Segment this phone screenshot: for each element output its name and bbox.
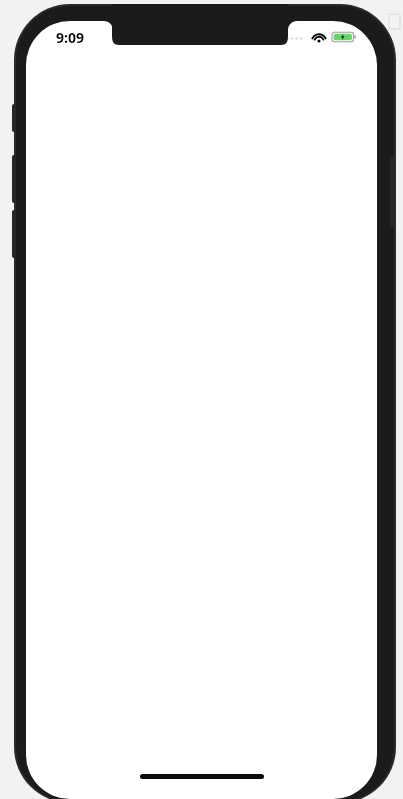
other: Document	[389, 14, 400, 29]
button[interactable]: Volume down	[12, 210, 16, 258]
button[interactable]: Home indicator	[140, 774, 264, 779]
button[interactable]: Silent switch	[12, 104, 16, 132]
button[interactable]: Volume up	[12, 155, 16, 203]
staticText: 9:09	[56, 28, 84, 47]
